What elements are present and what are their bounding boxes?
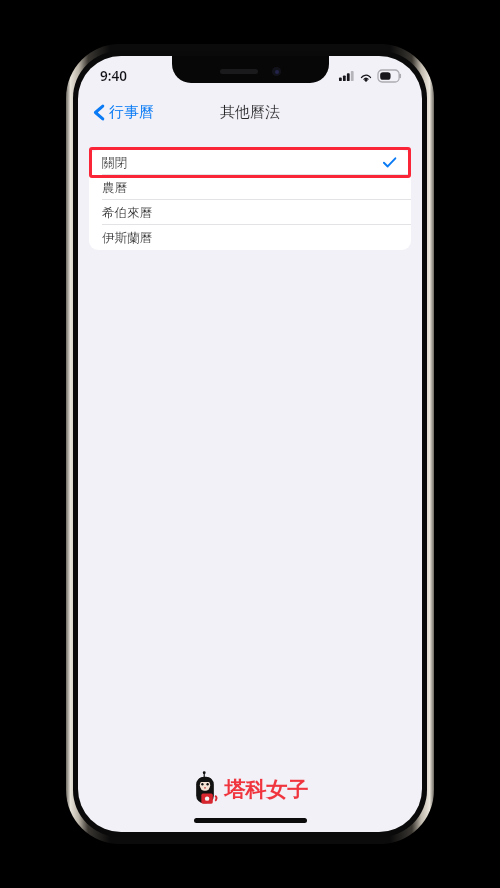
staticText: 9:40 bbox=[100, 67, 127, 85]
staticText: 塔科女子 bbox=[224, 777, 308, 803]
staticText: 希伯來曆 bbox=[102, 205, 152, 221]
staticText: 關閉 bbox=[102, 155, 127, 171]
staticText: 農曆 bbox=[102, 180, 127, 196]
button[interactable]: 關閉 bbox=[89, 150, 411, 175]
button[interactable]: 伊斯蘭曆 bbox=[89, 225, 411, 250]
staticText: 伊斯蘭曆 bbox=[102, 230, 152, 246]
button[interactable]: 行事曆 bbox=[89, 99, 159, 126]
staticText: 行事曆 bbox=[109, 103, 154, 122]
staticText: 其他曆法 bbox=[220, 103, 280, 122]
button[interactable]: 農曆 bbox=[89, 175, 411, 200]
button[interactable]: 希伯來曆 bbox=[89, 200, 411, 225]
